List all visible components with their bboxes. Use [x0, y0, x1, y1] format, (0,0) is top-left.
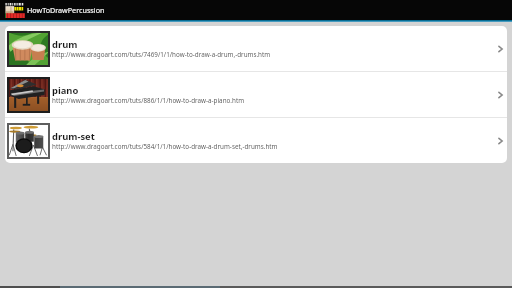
staticText: HowToDrawPercussion — [27, 5, 105, 15]
staticText: piano — [52, 84, 79, 97]
other: Open tutorial — [495, 131, 506, 151]
button[interactable]: drum-set — [5, 118, 507, 163]
other: Open tutorial — [495, 85, 506, 105]
button[interactable]: piano — [5, 72, 507, 117]
staticText: http://www.dragoart.com/tuts/584/1/1/how… — [52, 142, 278, 151]
staticText: drum-set — [52, 130, 95, 143]
staticText: http://www.dragoart.com/tuts/886/1/1/how… — [52, 96, 245, 105]
other: Open tutorial — [495, 39, 506, 59]
staticText: http://www.dragoart.com/tuts/7469/1/1/ho… — [52, 50, 271, 59]
staticText: drum — [52, 38, 78, 51]
button[interactable]: drum — [5, 26, 507, 71]
